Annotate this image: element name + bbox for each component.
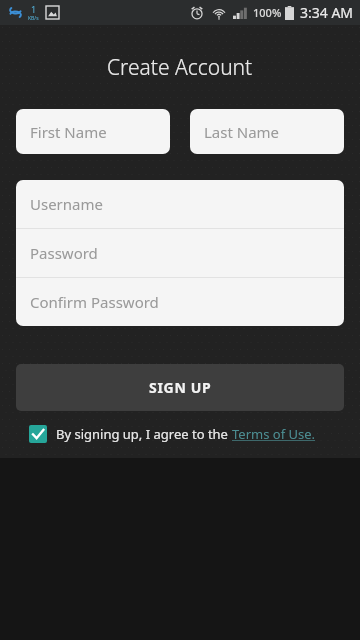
staticText: 1	[31, 3, 37, 15]
button[interactable]: Agree to Terms of Use	[29, 425, 331, 443]
staticText: Last Name	[204, 122, 280, 142]
button[interactable]: First Name	[16, 109, 170, 154]
other: Agree to Terms of Use	[29, 425, 47, 443]
staticText: Password	[30, 243, 98, 263]
staticText: Create Account	[107, 53, 253, 82]
button[interactable]: Password	[16, 229, 344, 277]
staticText: 100%	[253, 5, 282, 20]
button[interactable]: Confirm Password	[16, 278, 344, 326]
staticText: Username	[30, 194, 103, 214]
button[interactable]: SIGN UP	[16, 364, 344, 411]
staticText: By signing up, I agree to the	[56, 425, 232, 443]
staticText: 3:34 AM	[300, 3, 354, 22]
button[interactable]: Username	[16, 180, 344, 228]
staticText: KB/s	[28, 15, 39, 22]
staticText: SIGN UP	[149, 378, 212, 397]
button[interactable]: Last Name	[190, 109, 344, 154]
button[interactable]: Terms of Use.	[232, 425, 316, 443]
staticText: Confirm Password	[30, 292, 159, 312]
staticText: First Name	[30, 122, 107, 142]
